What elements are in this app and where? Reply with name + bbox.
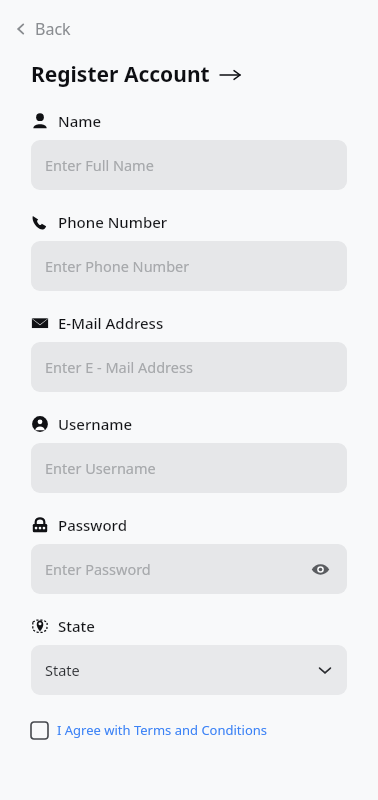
staticText: I Agree with Terms and Conditions bbox=[57, 721, 268, 739]
staticText: Phone Number bbox=[58, 212, 168, 232]
staticText: State bbox=[45, 660, 80, 680]
staticText: Enter Password bbox=[45, 559, 151, 579]
staticText: Name bbox=[58, 111, 102, 131]
button[interactable]: Show password bbox=[307, 556, 333, 582]
staticText: Register Account bbox=[31, 60, 210, 89]
button[interactable]: Enter Password bbox=[31, 544, 347, 594]
staticText: Password bbox=[58, 515, 127, 535]
button[interactable]: Enter Full Name bbox=[31, 140, 347, 190]
staticText: Enter Full Name bbox=[45, 155, 154, 175]
staticText: Username bbox=[58, 414, 133, 434]
button[interactable]: Enter E - Mail Address bbox=[31, 342, 347, 392]
button[interactable]: Register Account bbox=[31, 60, 240, 89]
button[interactable]: Back bbox=[10, 14, 75, 44]
button[interactable]: Enter Username bbox=[31, 443, 347, 493]
staticText: Enter E - Mail Address bbox=[45, 357, 193, 377]
staticText: State bbox=[58, 616, 95, 636]
button[interactable]: Accept terms bbox=[31, 721, 347, 739]
other: Accept terms bbox=[31, 722, 48, 739]
button[interactable]: Enter Phone Number bbox=[31, 241, 347, 291]
staticText: E-Mail Address bbox=[58, 313, 164, 333]
staticText: Back bbox=[35, 18, 71, 40]
staticText: Enter Username bbox=[45, 458, 156, 478]
staticText: Enter Phone Number bbox=[45, 256, 190, 276]
button[interactable]: State bbox=[31, 645, 347, 695]
